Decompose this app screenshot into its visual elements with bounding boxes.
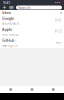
- staticText: Your receipt: [2, 33, 19, 36]
- button[interactable]: Apple: [0, 26, 64, 37]
- button[interactable]: Chat: [21, 86, 43, 93]
- staticText: 9:41: [55, 19, 62, 22]
- staticText: GitHub: [2, 38, 14, 43]
- button[interactable]: Meet: [43, 86, 64, 93]
- staticText: ≡: [8, 4, 14, 11]
- staticText: Inbox: [2, 10, 11, 15]
- staticText: Apple: [2, 27, 12, 32]
- staticText: Security alert: [2, 22, 19, 25]
- staticText: •••: [55, 0, 61, 5]
- button[interactable]: Compose: [2, 5, 7, 10]
- staticText: v: [60, 10, 62, 15]
- staticText: Search: [18, 5, 30, 10]
- staticText: Mon: [56, 41, 62, 44]
- staticText: Google: [2, 16, 14, 21]
- staticText: +: [2, 3, 6, 12]
- staticText: New sign-in: [2, 44, 18, 47]
- button[interactable]: Menu: [9, 5, 14, 10]
- button[interactable]: GitHub: [0, 37, 64, 48]
- staticText: 8:12: [55, 30, 62, 33]
- staticText: 9:41: [3, 0, 10, 5]
- button[interactable]: Google: [0, 15, 64, 26]
- button[interactable]: Mail: [0, 86, 21, 93]
- button[interactable]: Search: [16, 5, 62, 9]
